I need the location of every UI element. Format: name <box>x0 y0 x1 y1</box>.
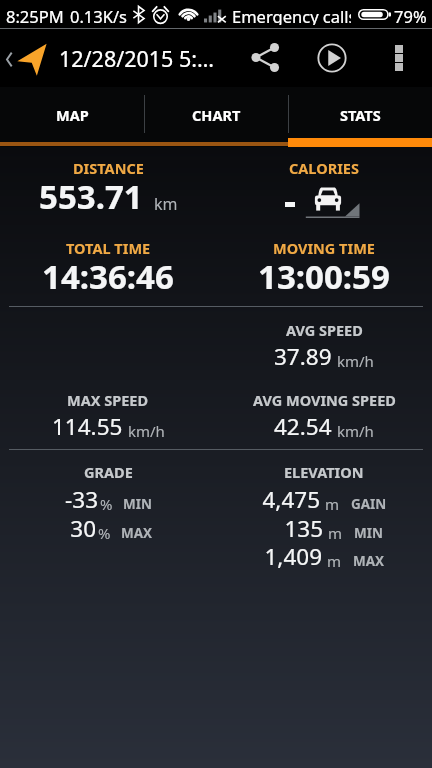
staticText: AVG MOVING SPEED <box>253 390 396 410</box>
staticText: 14:36:46 <box>42 254 174 299</box>
staticText: 37.89 <box>274 341 332 372</box>
button[interactable]: More options <box>375 28 423 87</box>
button[interactable]: Share <box>240 28 288 87</box>
staticText: 135 <box>284 513 323 544</box>
staticText: 30 <box>70 513 96 544</box>
staticText: km/h <box>337 421 374 441</box>
staticText: 4,475 <box>262 484 320 515</box>
staticText: MIN <box>354 524 383 542</box>
staticText: km <box>154 193 178 215</box>
staticText: 553.71 <box>39 174 143 219</box>
staticText: ELEVATION <box>284 462 364 482</box>
staticText: 8:25PM <box>6 5 64 27</box>
staticText: MAX <box>121 524 153 542</box>
staticText: 42.54 <box>274 411 332 442</box>
button[interactable]: Navigate up <box>0 28 54 87</box>
staticText: AVG SPEED <box>286 320 363 340</box>
staticText: Emergency calls <box>232 5 351 25</box>
staticText: m <box>327 551 342 571</box>
staticText: MIN <box>123 495 152 513</box>
staticText: DISTANCE <box>73 158 144 178</box>
button[interactable]: STATS <box>288 87 432 147</box>
staticText: MOVING TIME <box>273 238 375 258</box>
staticText: km/h <box>128 421 165 441</box>
staticText: 12/28/2015 5:… <box>59 44 215 70</box>
staticText: 13:00:59 <box>258 254 390 299</box>
staticText: % <box>100 494 113 514</box>
staticText: 1,409 <box>264 541 322 572</box>
button[interactable]: CHART <box>144 87 288 147</box>
button[interactable]: MAP <box>0 87 144 147</box>
staticText: m <box>325 494 340 514</box>
staticText: % <box>98 523 111 543</box>
staticText: MAX SPEED <box>67 390 149 410</box>
staticText: 114.55 <box>52 411 123 442</box>
staticText: TOTAL TIME <box>66 238 151 258</box>
staticText: GRADE <box>84 462 133 482</box>
button[interactable]: Play <box>302 28 362 87</box>
staticText: GAIN <box>351 495 387 513</box>
staticText: MAX <box>353 552 385 570</box>
staticText: CALORIES <box>289 158 359 178</box>
staticText: 79% <box>394 5 427 27</box>
staticText: 0.13K/s <box>70 5 127 27</box>
staticText: MAP <box>56 105 89 125</box>
staticText: STATS <box>340 105 381 125</box>
staticText: -33 <box>65 484 98 515</box>
staticText: CHART <box>192 105 241 125</box>
staticText: m <box>328 523 343 543</box>
staticText: km/h <box>337 351 374 371</box>
